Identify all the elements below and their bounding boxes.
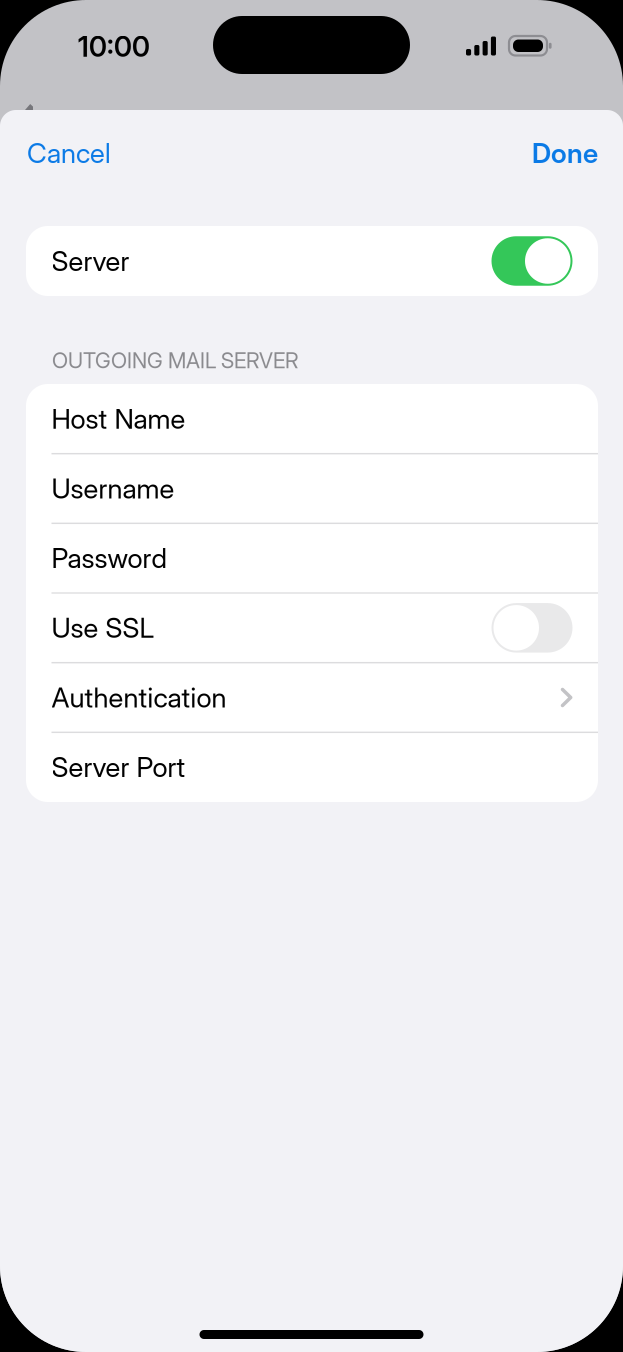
staticText: Authentication	[51, 681, 226, 714]
staticText: Done	[532, 136, 598, 170]
staticText: Cancel	[27, 136, 111, 170]
staticText: OUTGOING MAIL SERVER	[52, 348, 298, 373]
button[interactable]: Server Port	[26, 732, 598, 802]
button[interactable]: Cancel	[27, 127, 157, 179]
staticText: Use SSL	[51, 611, 154, 644]
button[interactable]: Host Name	[26, 384, 598, 454]
button[interactable]: Authentication	[26, 663, 598, 732]
staticText: 10:00	[78, 30, 150, 63]
staticText: Password	[51, 542, 166, 575]
button[interactable]: Done	[468, 127, 598, 179]
button[interactable]: Server	[26, 226, 598, 296]
staticText: Server	[51, 244, 129, 278]
staticText: Username	[51, 472, 174, 505]
button[interactable]: Username	[26, 454, 598, 523]
staticText: Host Name	[51, 402, 185, 435]
button[interactable]: Password	[26, 523, 598, 593]
button[interactable]: Use SSL	[26, 593, 598, 663]
staticText: Server Port	[51, 751, 185, 784]
